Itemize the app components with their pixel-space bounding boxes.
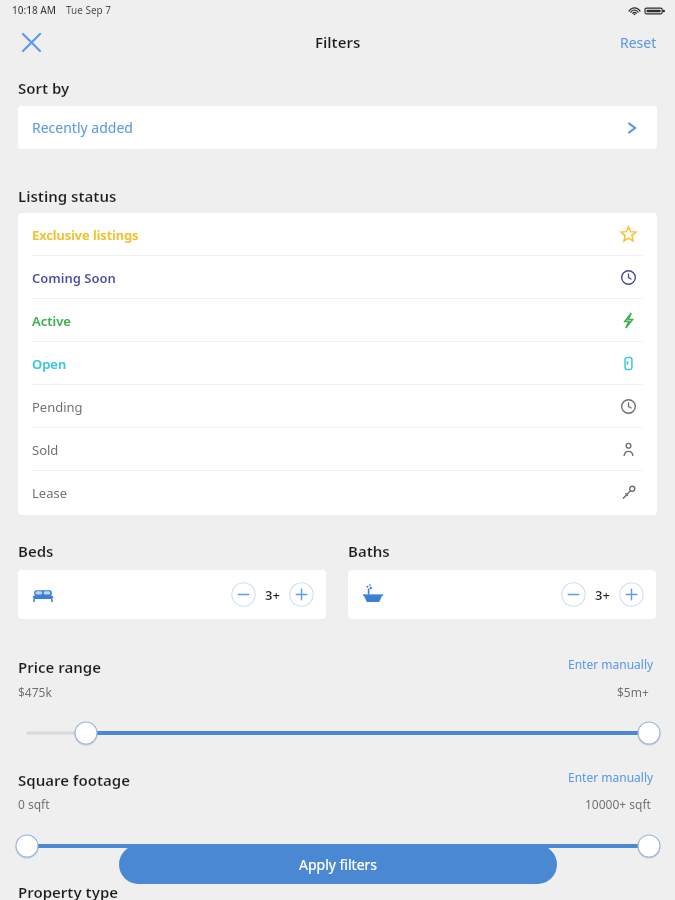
staticText: Baths	[348, 541, 390, 561]
button[interactable]: Reset	[620, 33, 657, 52]
button[interactable]: Apply filters	[119, 845, 557, 884]
staticText: 10:18 AM	[12, 3, 56, 17]
button[interactable]: Enter manually	[568, 769, 654, 785]
button[interactable]: Active	[18, 299, 657, 342]
button[interactable]: Recently added	[18, 106, 657, 149]
button[interactable]: Range slider	[0, 831, 675, 861]
staticText: 3+	[265, 586, 280, 604]
staticText: Price range	[18, 657, 101, 677]
button[interactable]: Pending	[18, 385, 657, 428]
staticText: Lease	[32, 484, 67, 502]
staticText: Recently added	[32, 118, 133, 137]
staticText: Square footage	[18, 770, 130, 790]
button[interactable]: Enter manually	[568, 656, 654, 672]
staticText: Pending	[32, 398, 83, 416]
staticText: 10000+ sqft	[585, 796, 651, 812]
staticText: $475k	[18, 684, 52, 700]
button[interactable]: Decrease	[561, 582, 586, 607]
button[interactable]: Close	[16, 27, 46, 57]
staticText: Tue Sep 7	[66, 3, 112, 17]
staticText: Beds	[18, 541, 54, 561]
staticText: $5m+	[617, 684, 649, 700]
button[interactable]: Increase	[289, 582, 314, 607]
staticText: Filters	[315, 32, 361, 52]
staticText: 3+	[595, 586, 610, 604]
button[interactable]: Increase	[619, 582, 644, 607]
button[interactable]: Open	[18, 342, 657, 385]
staticText: Sort by	[18, 78, 70, 98]
button[interactable]: Lease	[18, 471, 657, 514]
staticText: Reset	[620, 33, 657, 52]
button[interactable]: Range slider	[0, 718, 675, 748]
staticText: Active	[32, 312, 71, 330]
button[interactable]: Sold	[18, 428, 657, 471]
staticText: Enter manually	[568, 769, 654, 785]
staticText: Property type	[18, 882, 119, 900]
staticText: Sold	[32, 441, 59, 459]
button[interactable]: Exclusive listings	[18, 213, 657, 256]
staticText: Exclusive listings	[32, 226, 139, 244]
staticText: 0 sqft	[18, 796, 50, 812]
button[interactable]: Coming Soon	[18, 256, 657, 299]
staticText: Coming Soon	[32, 269, 116, 287]
staticText: Enter manually	[568, 656, 654, 672]
staticText: Listing status	[18, 186, 117, 206]
staticText: Open	[32, 355, 67, 373]
staticText: Apply filters	[299, 855, 378, 874]
button[interactable]: Decrease	[231, 582, 256, 607]
